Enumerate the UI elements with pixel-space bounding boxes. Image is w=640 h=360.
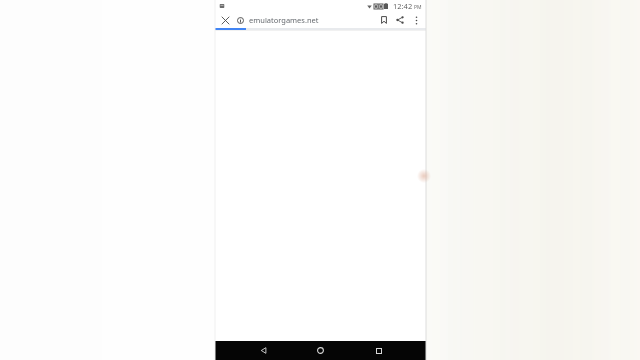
button[interactable]: Recent apps [369, 341, 388, 360]
button[interactable]: Home [311, 341, 330, 360]
button[interactable]: Site information [234, 14, 246, 26]
button[interactable]: Share [392, 12, 408, 28]
staticText: PM [414, 4, 422, 11]
button[interactable]: Bookmark [376, 12, 392, 28]
button[interactable]: Back [254, 341, 273, 360]
button[interactable]: More options [408, 12, 424, 28]
staticText: 12:42 [393, 1, 413, 11]
staticText: emulatorgames.net [249, 15, 319, 25]
button[interactable]: emulatorgames.net [249, 15, 376, 25]
button[interactable]: Close [218, 13, 232, 27]
